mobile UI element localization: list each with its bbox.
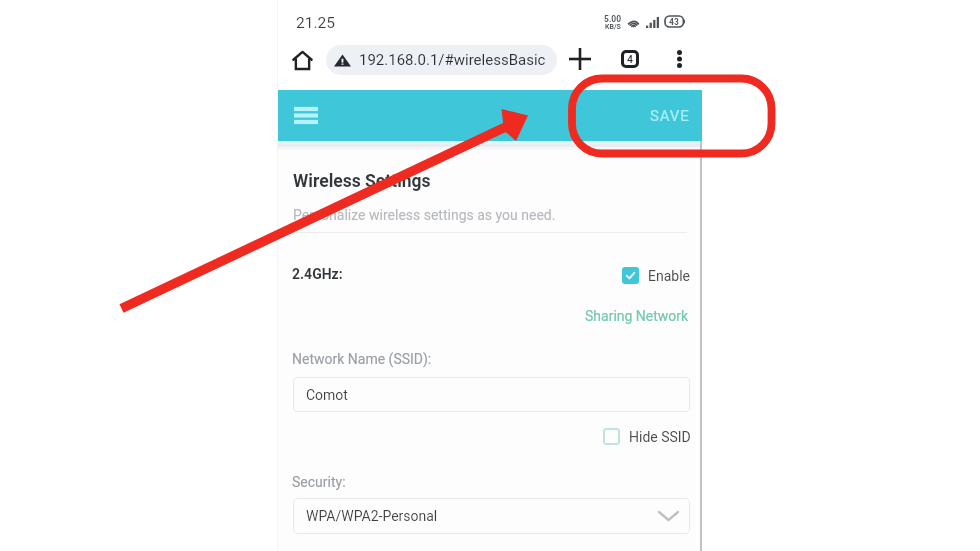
staticText: 2.4GHz: (292, 266, 343, 282)
staticText: Enable (648, 268, 690, 284)
staticText: Sharing Network (585, 308, 689, 324)
staticText: 5.00 (604, 14, 622, 24)
button[interactable]: Home (287, 45, 317, 75)
button[interactable]: Enable (622, 267, 690, 284)
staticText: Comot (306, 387, 348, 403)
button[interactable]: WPA/WPA2-Personal (293, 498, 690, 534)
button[interactable]: Comot (293, 377, 690, 412)
button[interactable]: Sharing Network (585, 308, 689, 324)
button[interactable]: Tabs (616, 45, 644, 73)
staticText: 192.168.0.1/#wirelessBasic (359, 51, 546, 69)
staticText: KB/S (605, 23, 621, 31)
staticText: WPA/WPA2-Personal (306, 508, 438, 524)
staticText: Network Name (SSID): (292, 351, 432, 367)
button[interactable]: 192.168.0.1/#wirelessBasic (326, 45, 557, 75)
staticText: Hide SSID (629, 429, 691, 445)
staticText: 43 (669, 17, 679, 27)
button[interactable]: More options (665, 45, 693, 73)
staticText: 4 (627, 53, 633, 65)
staticText: 21.25 (296, 14, 335, 32)
staticText: Personalize wireless settings as you nee… (293, 207, 556, 223)
button[interactable]: SAVE (638, 90, 702, 141)
button[interactable]: New tab (566, 45, 594, 73)
button[interactable]: Hide SSID (603, 428, 691, 445)
button[interactable]: Menu (287, 97, 324, 134)
staticText: Wireless Settings (293, 171, 431, 192)
staticText: Security: (292, 474, 346, 490)
staticText: SAVE (650, 107, 690, 125)
